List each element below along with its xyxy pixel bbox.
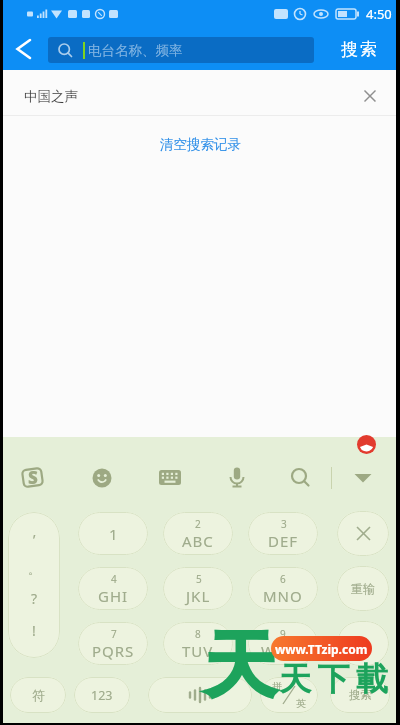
button[interactable]: 重输 bbox=[337, 566, 389, 611]
staticText: ’ bbox=[33, 530, 36, 549]
button[interactable] bbox=[337, 511, 389, 556]
staticText: 8 bbox=[195, 627, 201, 641]
staticText: 123 bbox=[91, 687, 113, 704]
staticText: 1 bbox=[109, 524, 118, 544]
staticText: 搜索 bbox=[340, 39, 378, 60]
button[interactable] bbox=[226, 466, 250, 490]
button[interactable] bbox=[352, 466, 376, 490]
button[interactable] bbox=[8, 34, 38, 64]
staticText: 9 bbox=[280, 627, 286, 641]
button[interactable]: 6 bbox=[248, 567, 318, 610]
staticText: 搜索 bbox=[349, 688, 372, 702]
button[interactable]: 123 bbox=[74, 677, 130, 713]
button[interactable]: S bbox=[20, 465, 45, 490]
staticText: 重输 bbox=[351, 581, 375, 596]
staticText: www.TTzip.com bbox=[275, 641, 368, 657]
button[interactable]: 搜索 bbox=[340, 28, 378, 70]
button[interactable]: 5 bbox=[163, 567, 233, 610]
button[interactable]: 2 bbox=[163, 512, 233, 555]
button[interactable] bbox=[357, 435, 376, 454]
button[interactable]: 1 bbox=[78, 512, 148, 555]
staticText: GHI bbox=[98, 586, 129, 606]
button[interactable]: 符 bbox=[10, 677, 66, 713]
staticText: DEF bbox=[268, 531, 299, 551]
staticText: 2 bbox=[195, 517, 201, 531]
button[interactable] bbox=[289, 466, 313, 490]
button[interactable]: 拼 bbox=[260, 677, 318, 713]
staticText: 中国之声 bbox=[24, 88, 78, 105]
staticText: 。 bbox=[28, 562, 40, 577]
staticText: 天 bbox=[204, 621, 276, 712]
button[interactable] bbox=[148, 677, 252, 713]
staticText: WXYZ bbox=[261, 641, 305, 661]
staticText: ? bbox=[31, 589, 38, 608]
staticText: MNO bbox=[263, 586, 303, 606]
staticText: 6 bbox=[280, 572, 286, 586]
staticText: 天下載 bbox=[279, 659, 395, 699]
staticText: S bbox=[28, 466, 38, 489]
staticText: 7 bbox=[111, 627, 117, 641]
button[interactable] bbox=[337, 621, 389, 666]
button[interactable]: 7 bbox=[78, 622, 148, 665]
staticText: 英 bbox=[296, 697, 306, 710]
staticText: PQRS bbox=[92, 641, 135, 661]
button[interactable]: 清空搜索记录 bbox=[0, 130, 400, 158]
staticText: 清空搜索记录 bbox=[160, 136, 241, 153]
staticText: 4 bbox=[111, 572, 117, 586]
button[interactable]: 3 bbox=[248, 512, 318, 555]
button[interactable]: 8 bbox=[163, 622, 233, 665]
staticText: 拼 bbox=[272, 680, 282, 693]
button[interactable]: 搜索 bbox=[330, 677, 390, 713]
button[interactable]: www.TTzip.com bbox=[271, 636, 372, 661]
button[interactable]: 电台名称、频率 bbox=[48, 37, 314, 63]
staticText: JKL bbox=[186, 586, 211, 606]
staticText: 3 bbox=[281, 517, 287, 531]
staticText: 电台名称、频率 bbox=[88, 42, 183, 59]
button[interactable]: ’ bbox=[8, 512, 60, 658]
button[interactable] bbox=[159, 466, 183, 490]
staticText: ABC bbox=[182, 531, 214, 551]
staticText: 4:50 bbox=[366, 5, 392, 23]
button[interactable]: 9 bbox=[248, 622, 318, 665]
staticText: 5 bbox=[196, 572, 202, 586]
button[interactable]: 中国之声 bbox=[0, 77, 400, 115]
staticText: TUV bbox=[182, 641, 214, 661]
staticText: 符 bbox=[32, 687, 45, 703]
button[interactable]: 4 bbox=[78, 567, 148, 610]
button[interactable] bbox=[91, 466, 115, 490]
staticText: ! bbox=[32, 621, 36, 640]
